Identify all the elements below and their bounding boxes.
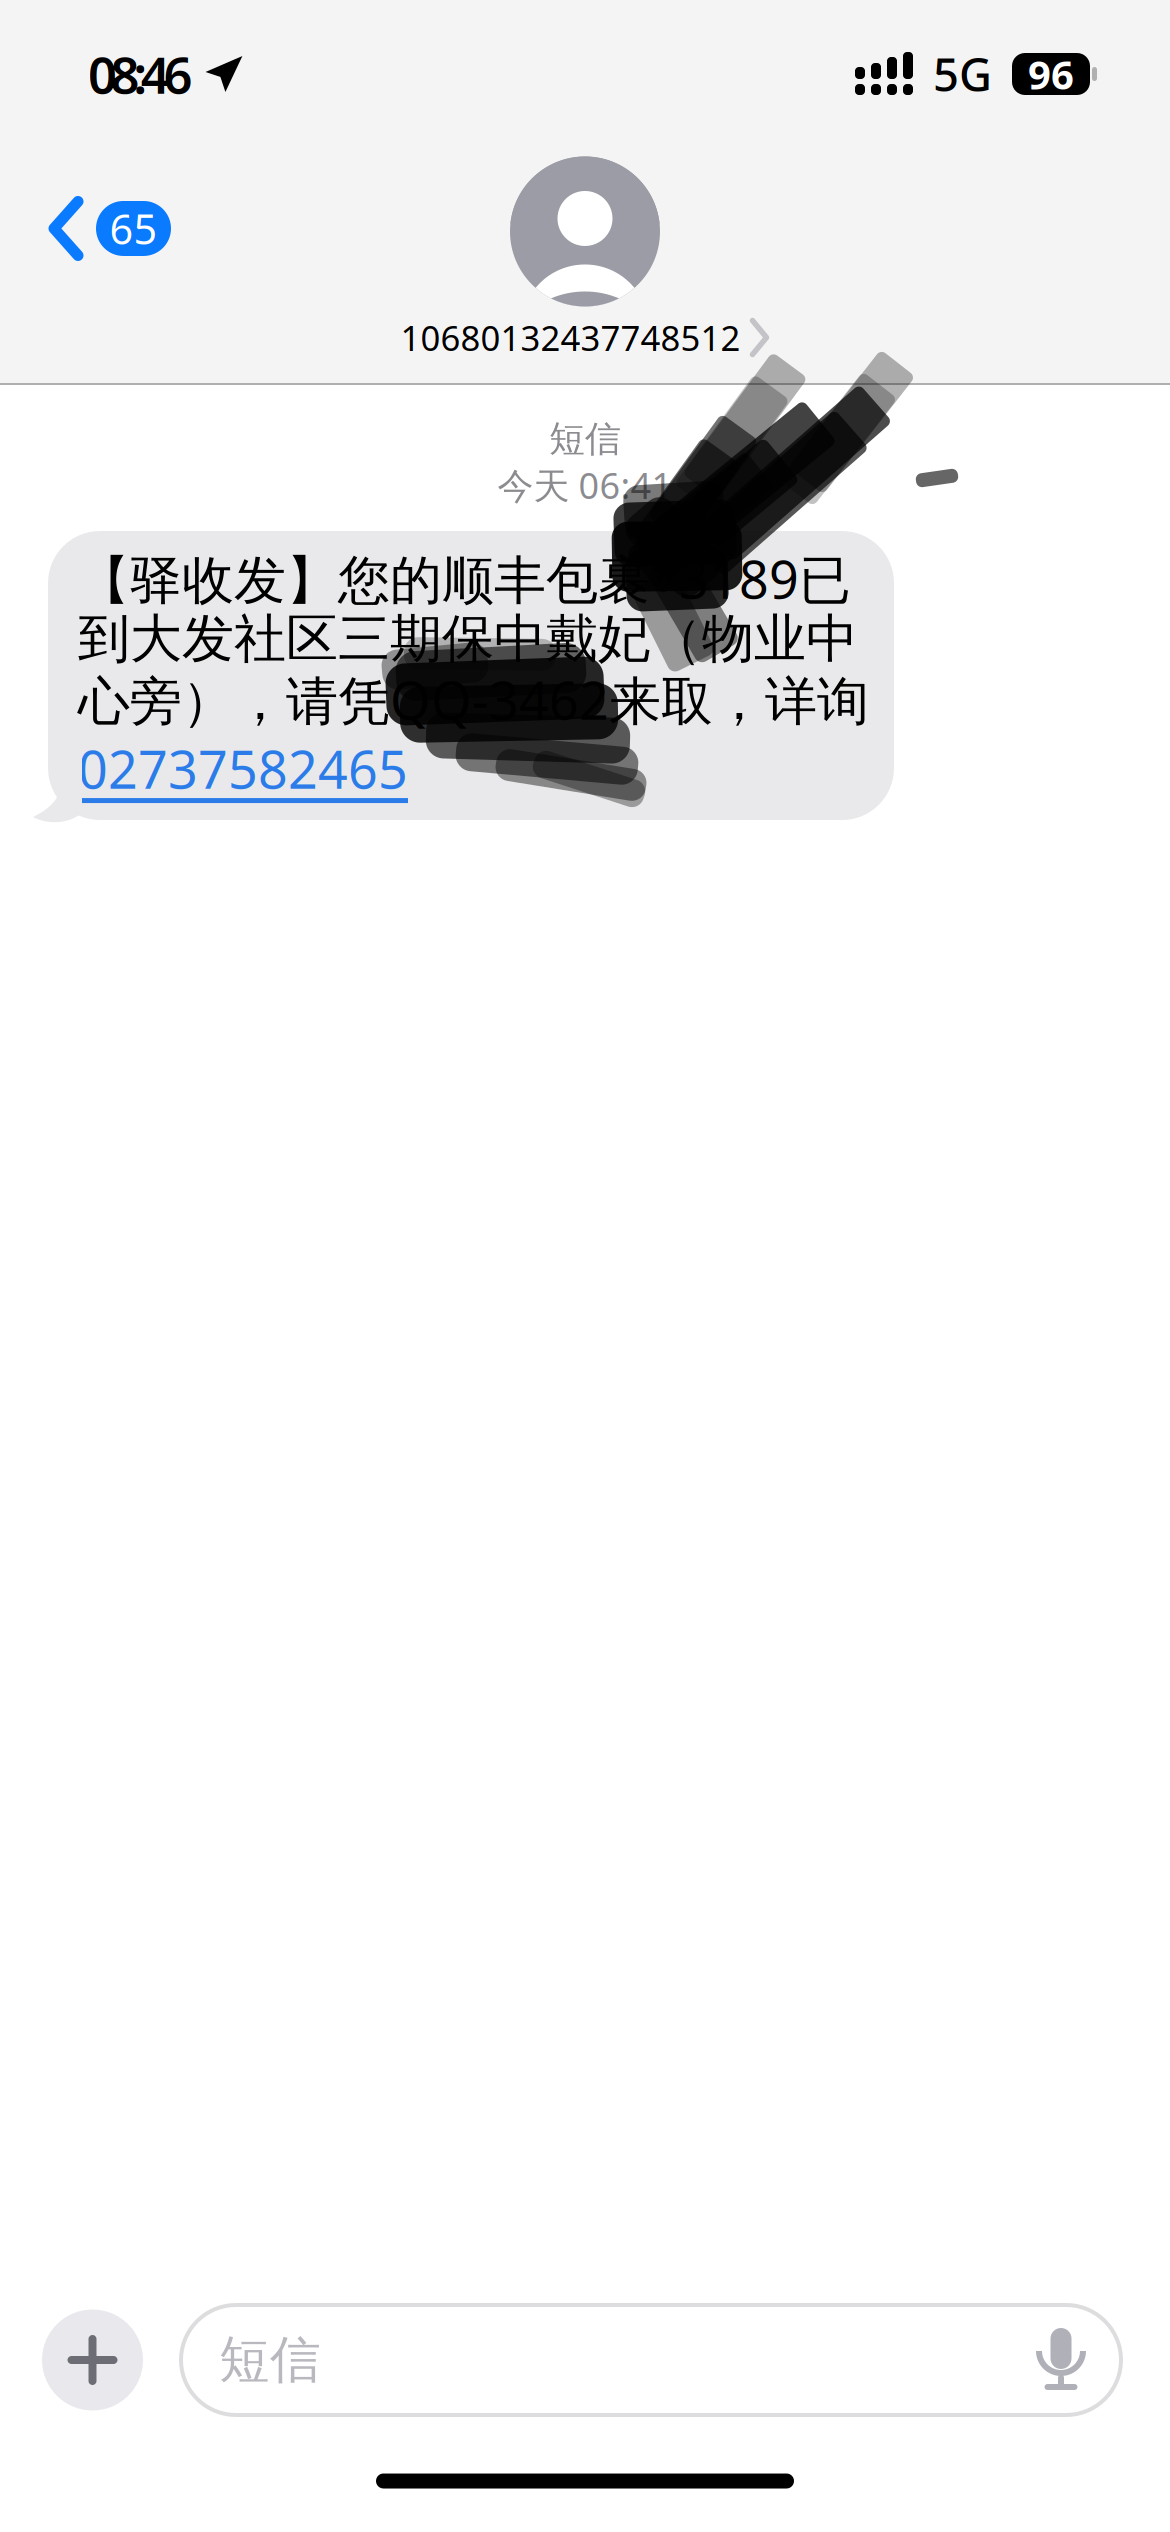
button[interactable]: More options	[42, 2290, 143, 2430]
button[interactable]: 65	[0, 162, 195, 294]
staticText: 10680132437748512	[400, 314, 740, 360]
button[interactable]: 短信	[181, 2305, 1121, 2415]
staticText: 96	[1028, 47, 1074, 100]
button[interactable]: 10680132437748512	[382, 306, 787, 366]
staticText: 65	[109, 201, 157, 256]
staticText: 08:46	[88, 40, 192, 108]
staticText: 短信	[219, 2329, 321, 2391]
staticText: 短信	[549, 417, 621, 461]
staticText: 5G	[933, 44, 992, 104]
staticText: 02737582465	[78, 734, 408, 803]
staticText: 【驿收发】您的顺丰包裹*3189已到大发社区三期保中戴妃（物业中心旁），请凭QQ…	[78, 544, 869, 734]
staticText: 今天 06:41	[497, 461, 672, 509]
